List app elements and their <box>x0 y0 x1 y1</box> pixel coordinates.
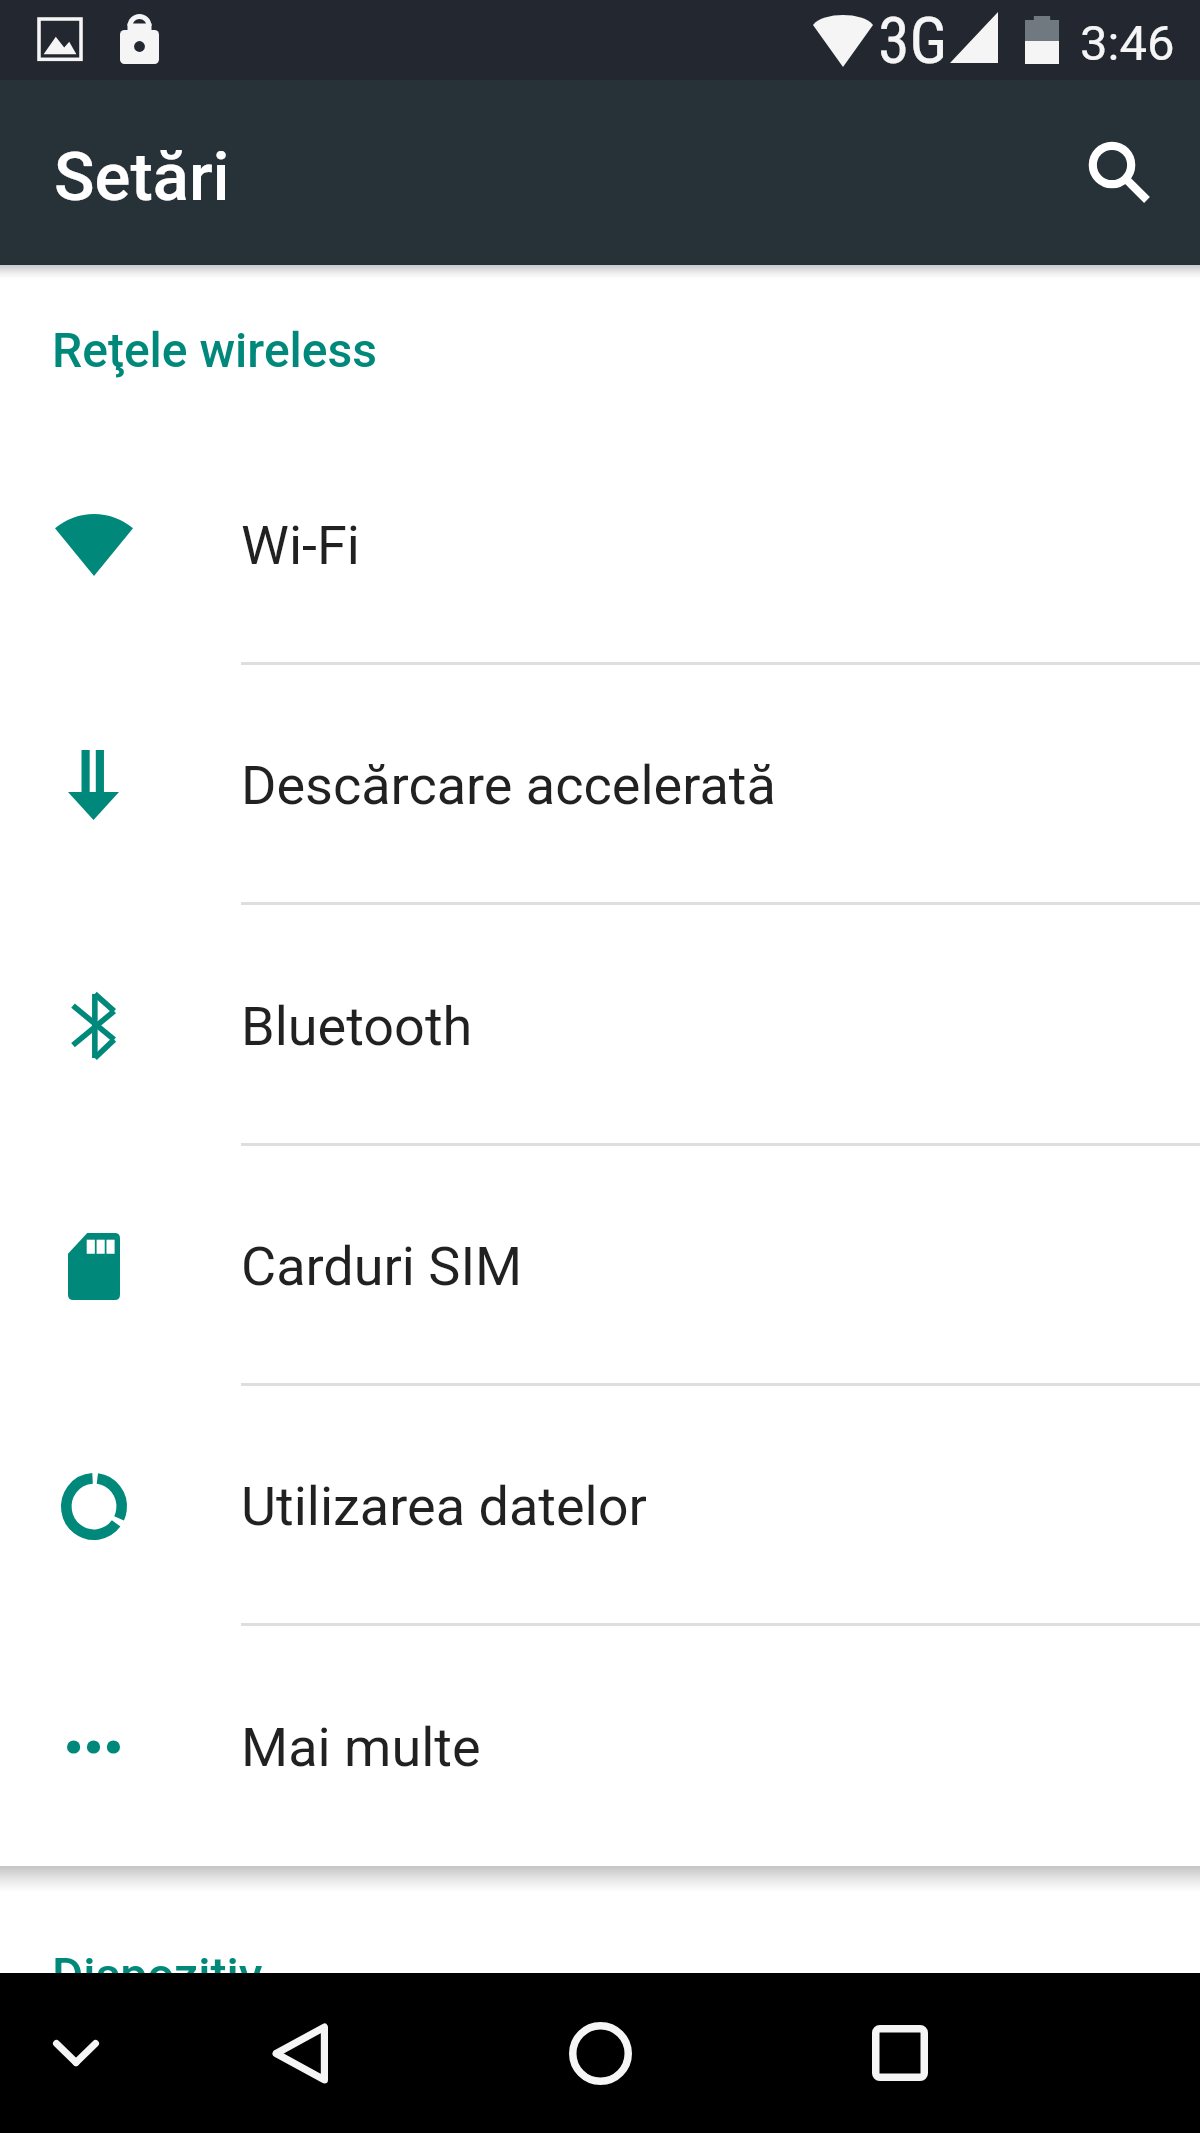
button[interactable]: Search <box>1050 103 1190 243</box>
staticText: Wi-Fi <box>241 514 360 577</box>
staticText: Setări <box>54 138 230 217</box>
button[interactable]: Home <box>540 1973 660 2133</box>
button[interactable]: Utilizarea datelor <box>0 1386 1200 1626</box>
staticText: Dispozitiv <box>52 1947 263 2003</box>
staticText: Carduri SIM <box>241 1235 523 1298</box>
staticText: Reţele wireless <box>52 322 377 378</box>
button[interactable]: Hide keyboard <box>16 1973 136 2133</box>
staticText: Mai multe <box>241 1716 481 1779</box>
button[interactable]: Bluetooth <box>0 906 1200 1146</box>
button[interactable]: Carduri SIM <box>0 1146 1200 1386</box>
button[interactable]: Mai multe <box>0 1627 1200 1867</box>
button[interactable]: Descărcare accelerată <box>0 665 1200 905</box>
button[interactable]: Recents <box>840 1973 960 2133</box>
button[interactable]: Wi-Fi <box>0 425 1200 665</box>
button[interactable]: Back <box>239 1973 359 2133</box>
staticText: Bluetooth <box>241 995 473 1058</box>
staticText: Descărcare accelerată <box>241 754 776 817</box>
staticText: Utilizarea datelor <box>241 1475 647 1538</box>
staticText: 3G <box>878 4 948 79</box>
staticText: 3:46 <box>1080 15 1175 72</box>
